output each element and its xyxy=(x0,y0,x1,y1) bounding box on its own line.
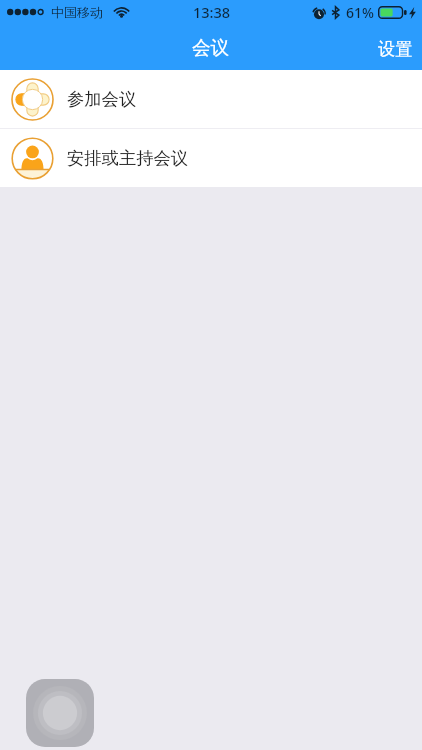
button[interactable]: 设置 xyxy=(364,30,422,65)
staticText: 参加会议 xyxy=(67,88,137,110)
button[interactable]: 参加会议 xyxy=(0,70,422,128)
button[interactable]: 安排或主持会议 xyxy=(0,129,422,187)
staticText: 中国移动 xyxy=(51,4,103,20)
staticText: 安排或主持会议 xyxy=(67,147,189,169)
staticText: 61% xyxy=(346,3,374,22)
staticText: 设置 xyxy=(378,38,413,60)
staticText: 13:38 xyxy=(193,2,231,22)
button[interactable]: AssistiveTouch xyxy=(26,679,94,747)
staticText: 会议 xyxy=(192,36,230,59)
